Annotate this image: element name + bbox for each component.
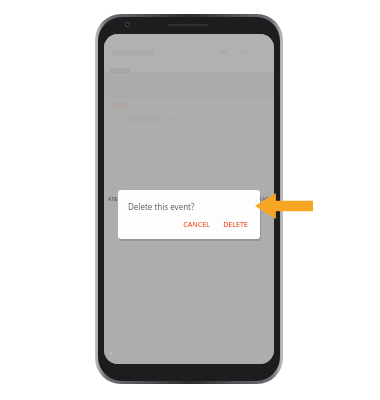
other: Arrow pointing to DELETE button xyxy=(255,193,313,219)
staticText: AT&T xyxy=(108,196,120,203)
staticText: Delete this event? xyxy=(128,201,195,212)
staticText: DELETE xyxy=(223,220,248,230)
button[interactable]: CANCEL xyxy=(179,218,214,232)
staticText: CANCEL xyxy=(183,220,210,230)
button[interactable]: DELETE xyxy=(219,218,252,232)
staticText: 11:00 AM xyxy=(248,196,270,203)
